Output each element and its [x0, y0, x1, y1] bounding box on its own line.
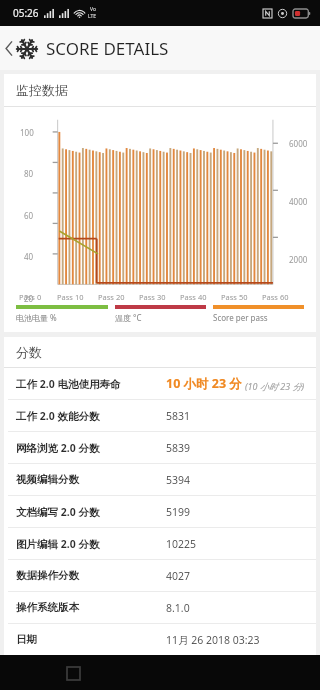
staticText: 操作系统版本	[16, 601, 79, 614]
staticText: 电池电量 %	[16, 312, 57, 323]
staticText: Pass 20	[98, 292, 125, 302]
staticText: 10 小时 23 分	[166, 375, 242, 392]
staticText: 05:26	[13, 6, 39, 20]
staticText: 5394	[166, 473, 191, 487]
staticText: 数据操作分数	[16, 569, 79, 582]
staticText: 60	[24, 210, 34, 221]
staticText: 20	[24, 293, 34, 304]
button[interactable]: 工作 2.0 效能分数	[4, 400, 316, 431]
staticText: 100	[20, 127, 34, 138]
staticText: 日期	[16, 633, 37, 646]
staticText: 分数	[16, 344, 42, 360]
button[interactable]: Back	[0, 37, 173, 60]
staticText: 5831	[166, 409, 191, 423]
staticText: (10 小时 23 分)	[245, 380, 305, 392]
staticText: 4000	[289, 196, 308, 207]
button[interactable]: 网络浏览 2.0 分数	[4, 432, 316, 463]
staticText: Pass 0	[19, 292, 42, 302]
button[interactable]: 文档编写 2.0 分数	[4, 496, 316, 527]
staticText: 2000	[289, 254, 308, 265]
staticText: Vo	[90, 6, 96, 13]
staticText: 工作 2.0 电池使用寿命	[16, 377, 121, 391]
staticText: 5199	[166, 505, 191, 519]
staticText: 工作 2.0 效能分数	[16, 409, 100, 423]
staticText: 温度 °C	[115, 312, 142, 323]
staticText: SCORE DETAILS	[46, 37, 169, 60]
staticText: 图片编辑 2.0 分数	[16, 537, 100, 551]
staticText: Pass 10	[57, 292, 84, 302]
staticText: Pass 50	[221, 292, 248, 302]
staticText: Pass 40	[180, 292, 207, 302]
staticText: Pass 30	[139, 292, 166, 302]
button[interactable]: 操作系统版本	[4, 592, 316, 623]
staticText: LTE	[88, 13, 97, 20]
button[interactable]: 视频编辑分数	[4, 464, 316, 495]
staticText: 4027	[166, 569, 191, 583]
button[interactable]: 图片编辑 2.0 分数	[4, 528, 316, 559]
staticText: 监控数据	[16, 82, 68, 98]
staticText: 10225	[166, 537, 197, 551]
staticText: 6000	[289, 138, 308, 149]
button[interactable]: 日期	[4, 624, 316, 655]
staticText: 40	[24, 251, 34, 262]
staticText: 文档编写 2.0 分数	[16, 505, 100, 519]
button[interactable]: 工作 2.0 电池使用寿命	[4, 368, 316, 399]
staticText: 网络浏览 2.0 分数	[16, 441, 100, 455]
staticText: Pass 60	[262, 292, 289, 302]
staticText: Score per pass	[213, 312, 268, 323]
button[interactable]: 数据操作分数	[4, 560, 316, 591]
button[interactable]: Recents	[57, 657, 89, 689]
staticText: 11月 26 2018 03:23	[166, 633, 260, 647]
staticText: 80	[24, 168, 34, 179]
staticText: 8.1.0	[166, 601, 190, 615]
staticText: 视频编辑分数	[16, 473, 79, 486]
staticText: 5839	[166, 441, 191, 455]
